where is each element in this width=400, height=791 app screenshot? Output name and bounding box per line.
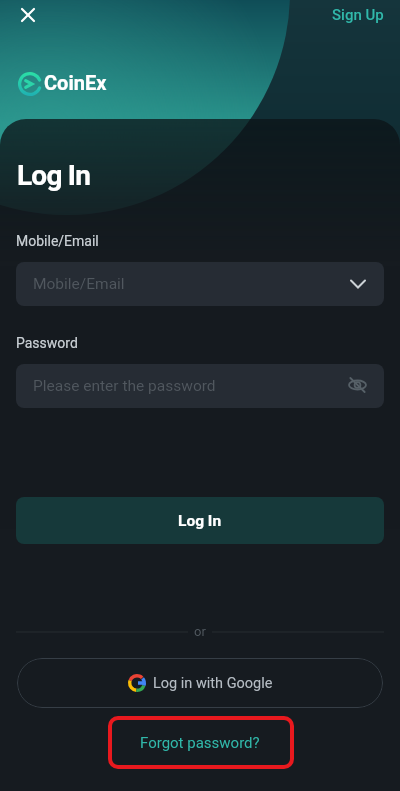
staticText: Log In xyxy=(17,159,91,192)
staticText: Sign Up xyxy=(332,6,384,24)
staticText: Forgot password? xyxy=(140,734,260,752)
staticText: CoinEx xyxy=(44,71,107,94)
button[interactable]: Sign Up xyxy=(326,0,390,30)
button[interactable]: Forgot password? xyxy=(132,732,268,754)
staticText: Password xyxy=(16,335,78,351)
staticText: Log in with Google xyxy=(153,675,273,692)
button[interactable]: Log In xyxy=(16,497,384,544)
staticText: Mobile/Email xyxy=(33,275,125,293)
staticText: or xyxy=(194,624,206,639)
staticText: Please enter the password xyxy=(33,377,216,395)
button[interactable]: Log in with Google xyxy=(17,658,383,708)
button[interactable] xyxy=(14,1,42,29)
button[interactable]: Please enter the password xyxy=(16,364,384,408)
staticText: Mobile/Email xyxy=(16,233,99,249)
button[interactable]: Mobile/Email xyxy=(16,262,384,306)
staticText: Log In xyxy=(178,512,222,530)
